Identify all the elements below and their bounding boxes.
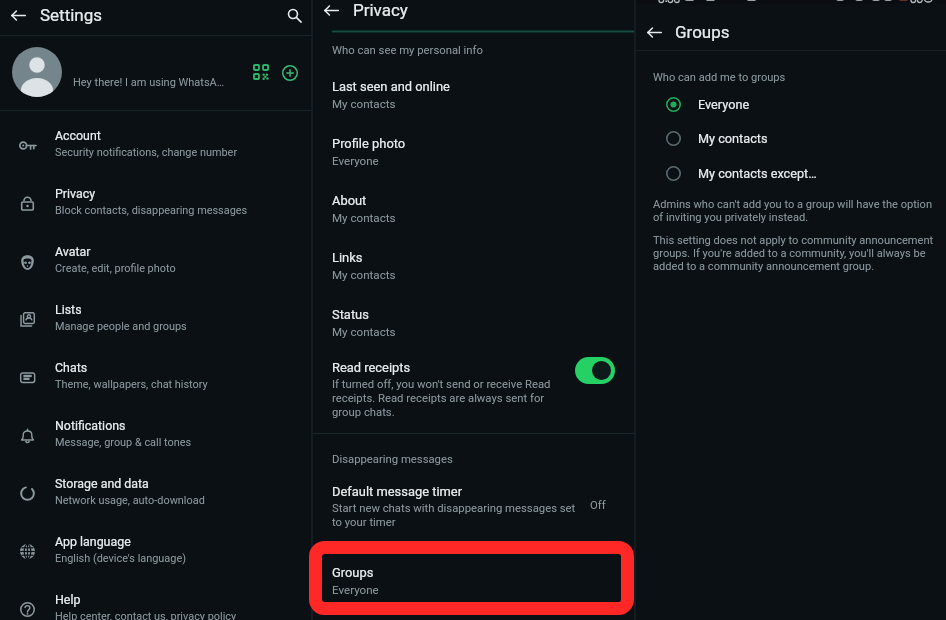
staticText: If turned off, you won't send or receive… xyxy=(332,378,560,419)
staticText: Start new chats with disappearing messag… xyxy=(332,502,582,529)
staticText: Lists xyxy=(55,302,82,317)
staticText: English (device's language) xyxy=(55,552,186,565)
staticText: Privacy xyxy=(55,186,96,201)
staticText: Who can add me to groups xyxy=(653,71,786,84)
button[interactable]: QR code xyxy=(247,58,275,86)
button[interactable]: Back xyxy=(318,0,344,20)
staticText: Default message timer xyxy=(332,484,463,499)
button[interactable]: Avatar xyxy=(0,232,311,290)
staticText: Create, edit, profile photo xyxy=(55,262,176,275)
staticText: Privacy xyxy=(353,0,408,20)
button[interactable]: Chats xyxy=(0,348,311,406)
staticText: Links xyxy=(332,250,363,265)
staticText: Groups xyxy=(332,565,374,580)
button[interactable]: My contacts except… xyxy=(636,156,946,190)
staticText: About xyxy=(332,193,367,208)
button[interactable]: Status xyxy=(313,298,634,355)
staticText: Block contacts, disappearing messages xyxy=(55,204,248,217)
staticText: App language xyxy=(55,534,131,549)
staticText: Help xyxy=(55,592,81,607)
staticText: My contacts xyxy=(332,97,396,111)
staticText: My contacts xyxy=(332,325,396,339)
staticText: Everyone xyxy=(332,583,379,597)
staticText: Everyone xyxy=(698,97,750,112)
staticText: Read receipts xyxy=(332,360,411,375)
button[interactable]: Hey there! I am using WhatsA… xyxy=(0,36,311,110)
staticText: Theme, wallpapers, chat history xyxy=(55,378,208,391)
button[interactable]: Search xyxy=(280,0,308,30)
staticText: My contacts xyxy=(332,268,396,282)
button[interactable]: Add xyxy=(275,58,304,87)
button[interactable]: Groups xyxy=(313,556,634,612)
staticText: Admins who can't add you to a group will… xyxy=(653,198,939,224)
button[interactable]: Profile photo xyxy=(313,127,634,184)
staticText: Groups xyxy=(675,22,730,42)
staticText: Account xyxy=(55,128,101,143)
button[interactable]: Everyone xyxy=(636,87,946,121)
button[interactable]: About xyxy=(313,184,634,241)
staticText: Who can see my personal info xyxy=(332,44,483,57)
button[interactable]: App language xyxy=(0,522,311,580)
staticText: This setting does not apply to community… xyxy=(653,234,939,273)
button[interactable]: Links xyxy=(313,241,634,298)
button[interactable]: Lists xyxy=(0,290,311,348)
button[interactable]: Back xyxy=(641,19,667,45)
button[interactable]: Help xyxy=(0,580,311,620)
staticText: Notifications xyxy=(55,418,126,433)
staticText: Settings xyxy=(40,5,103,25)
staticText: Status xyxy=(332,307,369,322)
button[interactable]: Back xyxy=(5,2,31,28)
button[interactable]: Read receipts toggle xyxy=(575,357,615,384)
button[interactable]: Privacy xyxy=(0,174,311,232)
staticText: Everyone xyxy=(332,154,379,168)
staticText: Security notifications, change number xyxy=(55,146,238,159)
staticText: Manage people and groups xyxy=(55,320,187,333)
staticText: Disappearing messages xyxy=(332,453,453,466)
staticText: Last seen and online xyxy=(332,79,450,94)
staticText: My contacts except… xyxy=(698,166,817,181)
staticText: My contacts xyxy=(698,131,768,146)
button[interactable]: Default message timer xyxy=(313,480,634,535)
staticText: My contacts xyxy=(332,211,396,225)
button[interactable]: Read receipts xyxy=(313,355,634,423)
staticText: Chats xyxy=(55,360,88,375)
staticText: Off xyxy=(590,499,606,512)
button[interactable]: My contacts xyxy=(636,121,946,155)
staticText: Hey there! I am using WhatsA… xyxy=(73,76,225,89)
staticText: Profile photo xyxy=(332,136,406,151)
button[interactable]: Notifications xyxy=(0,406,311,464)
staticText: Help center, contact us, privacy policy xyxy=(55,610,237,620)
button[interactable]: Last seen and online xyxy=(313,70,634,127)
staticText: Avatar xyxy=(55,244,91,259)
staticText: Message, group & call tones xyxy=(55,436,192,449)
staticText: Storage and data xyxy=(55,476,149,491)
button[interactable]: Account xyxy=(0,116,311,174)
button[interactable]: Storage and data xyxy=(0,464,311,522)
staticText: Network usage, auto-download xyxy=(55,494,205,507)
